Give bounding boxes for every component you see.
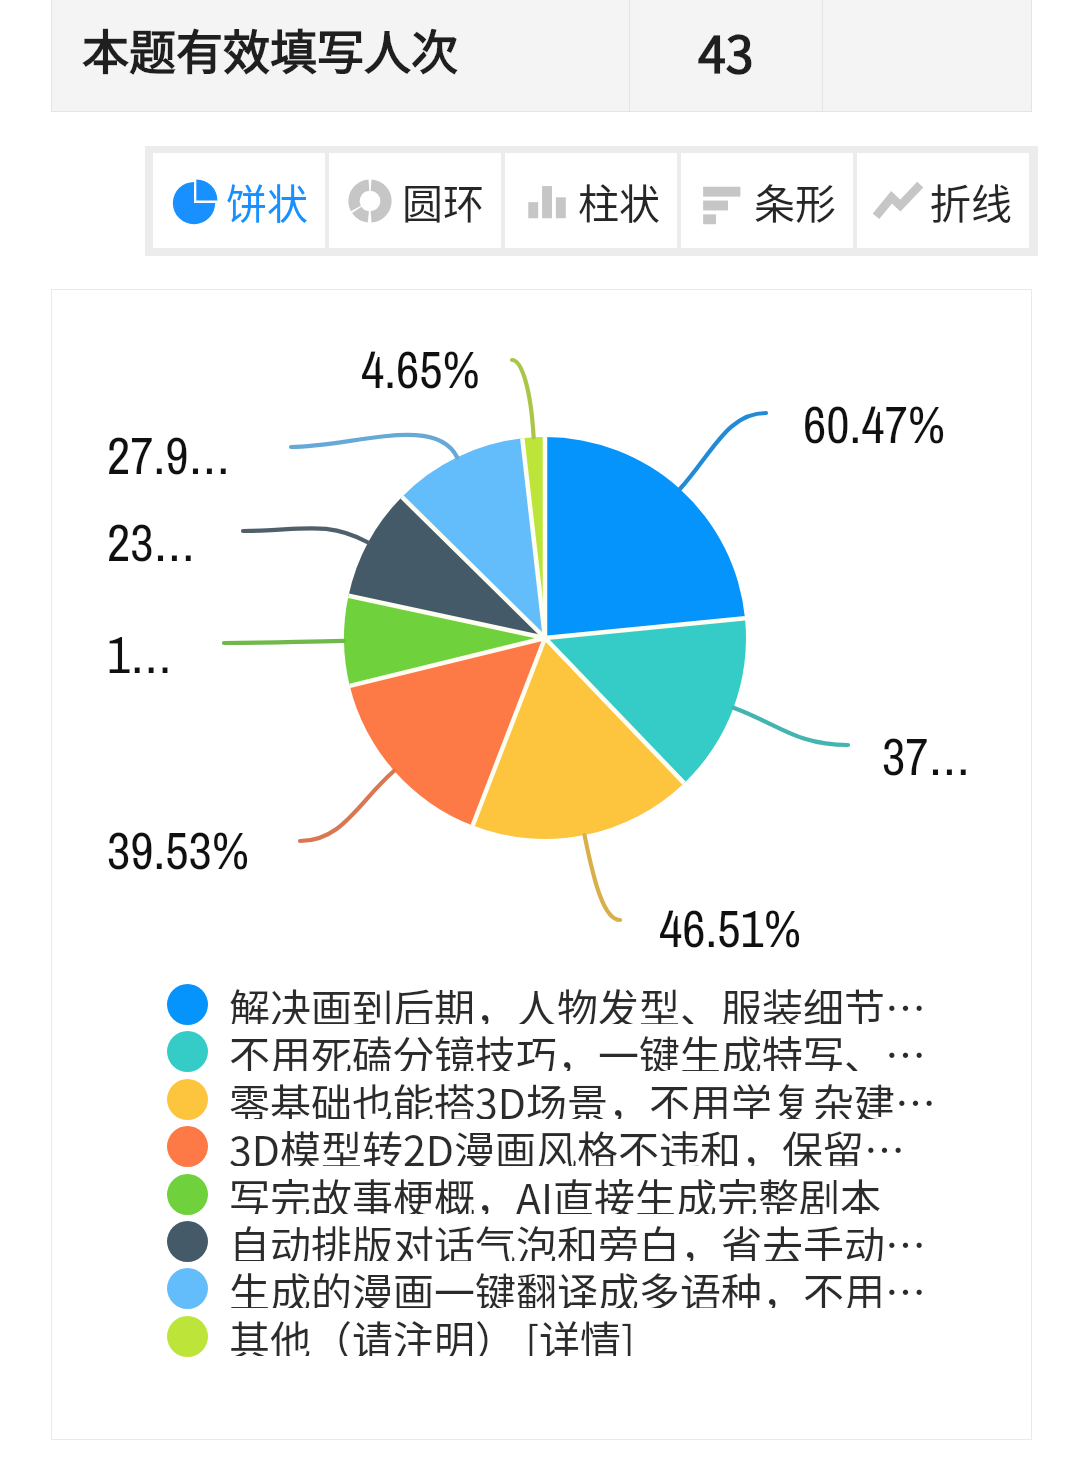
button[interactable]: 本题有效填写人次: [51, 0, 1032, 112]
button[interactable]: 柱状: [505, 153, 677, 248]
staticText: 43: [698, 15, 754, 87]
staticText: 27.9…: [107, 421, 231, 490]
button[interactable]: 零基础也能搭3D场景，不用学复杂建…: [167, 1075, 936, 1123]
button[interactable]: 其他（请注明） [详情]: [167, 1312, 635, 1360]
staticText: 零基础也能搭3D场景，不用学复杂建…: [229, 1071, 936, 1119]
staticText: 饼状: [226, 171, 308, 230]
button[interactable]: 生成的漫画一键翻译成多语种，不用…: [167, 1264, 926, 1312]
button[interactable]: 圆环: [329, 153, 501, 248]
staticText: 23…: [107, 508, 196, 577]
staticText: 60.47%: [803, 390, 945, 459]
staticText: 柱状: [578, 171, 660, 230]
staticText: 1…: [107, 620, 173, 689]
button[interactable]: 自动排版对话气泡和旁白，省去手动…: [167, 1217, 926, 1265]
staticText: 圆环: [402, 171, 484, 230]
staticText: 46.51%: [659, 894, 801, 963]
staticText: 39.53%: [107, 816, 249, 885]
staticText: 自动排版对话气泡和旁白，省去手动…: [229, 1213, 926, 1261]
staticText: 条形: [754, 171, 836, 230]
staticText: 4.65%: [361, 335, 480, 404]
button[interactable]: 解决画到后期，人物发型、服装细节…: [167, 980, 926, 1028]
staticText: 生成的漫画一键翻译成多语种，不用…: [229, 1260, 926, 1308]
button[interactable]: 饼状: [153, 153, 325, 248]
staticText: 不用死磕分镜技巧，一键生成特写、…: [229, 1023, 926, 1071]
staticText: 本题有效填写人次: [82, 14, 458, 82]
button[interactable]: 条形: [681, 153, 853, 248]
staticText: 37…: [882, 722, 971, 791]
button[interactable]: 写完故事梗概，AI直接生成完整剧本: [167, 1170, 881, 1218]
staticText: 3D模型转2D漫画风格不违和，保留…: [229, 1118, 905, 1166]
staticText: 其他（请注明） [详情]: [229, 1308, 635, 1356]
button[interactable]: 折线: [857, 153, 1029, 248]
button[interactable]: 不用死磕分镜技巧，一键生成特写、…: [167, 1027, 926, 1075]
button[interactable]: 3D模型转2D漫画风格不违和，保留…: [167, 1122, 905, 1170]
staticText: 写完故事梗概，AI直接生成完整剧本: [229, 1166, 881, 1214]
staticText: 解决画到后期，人物发型、服装细节…: [229, 976, 926, 1024]
staticText: 折线: [930, 171, 1012, 230]
